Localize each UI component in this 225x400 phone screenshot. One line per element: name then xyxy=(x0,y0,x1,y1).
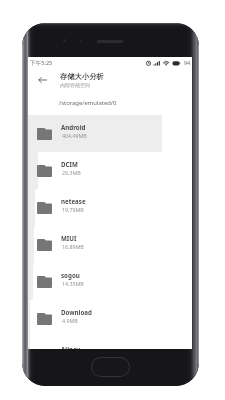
button[interactable]: Alipay xyxy=(28,337,192,349)
button[interactable]: MIUI xyxy=(28,226,192,263)
button[interactable]: /storage/emulated/0 xyxy=(28,93,192,115)
staticText: 14.35MB xyxy=(62,280,84,287)
staticText: 16.89MB xyxy=(62,243,84,250)
staticText: MIUI xyxy=(61,234,77,242)
button[interactable]: Download xyxy=(28,300,192,337)
staticText: 19.79MB xyxy=(62,206,84,213)
staticText: Android xyxy=(61,123,86,131)
staticText: 内部存储空间 xyxy=(60,82,90,88)
staticText: Alipay xyxy=(61,345,81,349)
staticText: 下午5:25 xyxy=(30,59,53,67)
staticText: 存储大小分析 xyxy=(60,72,104,81)
staticText: 29.3MB xyxy=(62,169,81,176)
staticText: netease xyxy=(61,197,86,205)
button[interactable]: Back xyxy=(30,68,54,92)
button[interactable]: netease xyxy=(28,189,192,226)
button[interactable]: Android xyxy=(28,115,192,152)
staticText: /storage/emulated/0 xyxy=(59,99,117,107)
staticText: 404.49MB xyxy=(62,132,87,139)
staticText: 4.9MB xyxy=(62,317,78,324)
staticText: sogou xyxy=(61,271,80,279)
staticText: 94 xyxy=(184,59,191,66)
button[interactable]: DCIM xyxy=(28,152,192,189)
staticText: DCIM xyxy=(61,160,78,168)
staticText: Download xyxy=(61,308,92,316)
button[interactable]: sogou xyxy=(28,263,192,300)
